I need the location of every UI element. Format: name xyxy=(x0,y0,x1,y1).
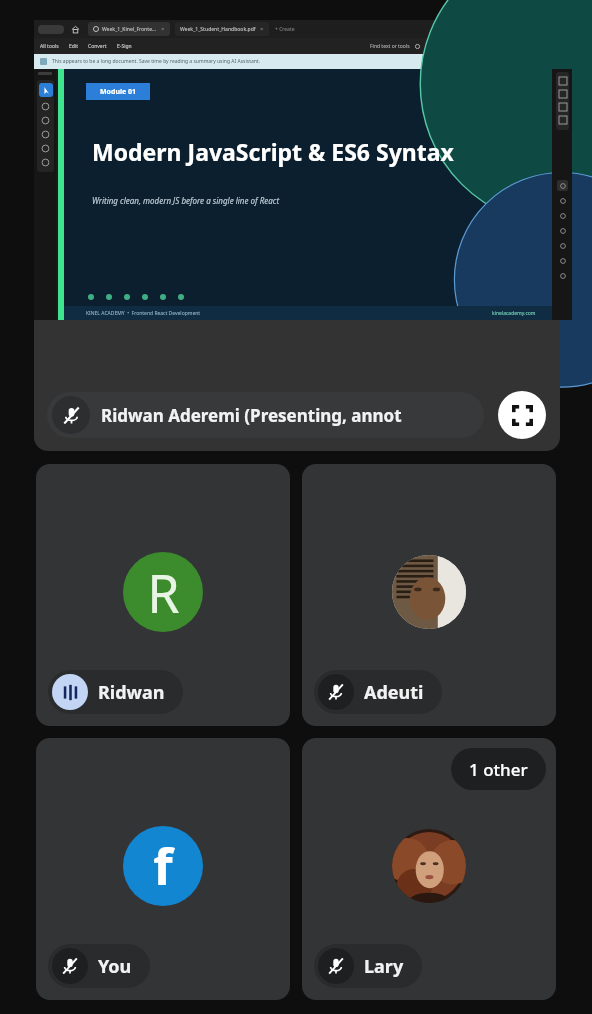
staticText: Edit xyxy=(69,43,78,50)
button[interactable]: Ridwan Aderemi (Presenting, annot xyxy=(47,392,484,438)
button[interactable]: R xyxy=(36,464,290,726)
staticText: Find text or tools xyxy=(370,43,410,50)
staticText: + Create xyxy=(275,26,295,33)
staticText: Week_1_Student_Handbook.pdf xyxy=(180,26,256,33)
staticText: Adeuti xyxy=(364,680,424,705)
staticText: Modern JavaScript & ES6 Syntax xyxy=(92,136,454,167)
staticText: Writing clean, modern JS before a single… xyxy=(92,195,280,206)
staticText: All tools xyxy=(40,43,59,50)
staticText: R xyxy=(147,557,180,628)
staticText: 1 other xyxy=(469,758,528,781)
staticText: × xyxy=(161,25,165,33)
staticText: kinelacademy.com xyxy=(492,310,536,317)
staticText: This appears to be a long document. Save… xyxy=(52,58,260,65)
button[interactable]: Full screen xyxy=(498,391,546,439)
staticText: Module 01 xyxy=(100,87,137,97)
button[interactable]: Lary xyxy=(314,944,422,988)
button[interactable]: You xyxy=(48,944,150,988)
staticText: E-Sign xyxy=(117,43,132,50)
staticText: Ridwan xyxy=(98,680,165,705)
staticText: f xyxy=(153,832,173,900)
button[interactable]: Adeuti xyxy=(302,464,556,726)
button[interactable]: 1 other xyxy=(302,738,556,1000)
staticText: You xyxy=(98,954,132,979)
button[interactable]: Ridwan xyxy=(48,670,183,714)
staticText: Convert xyxy=(88,43,107,50)
button[interactable]: Adeuti xyxy=(314,670,442,714)
staticText: × xyxy=(260,25,264,33)
button[interactable]: f xyxy=(36,738,290,1000)
staticText: Week_1_Kinel_Fronte... xyxy=(102,26,157,33)
staticText: Ridwan Aderemi (Presenting, annot xyxy=(101,404,402,427)
staticText: KINEL ACADEMY • Frontend React Developme… xyxy=(86,310,201,317)
staticText: Lary xyxy=(364,954,404,979)
